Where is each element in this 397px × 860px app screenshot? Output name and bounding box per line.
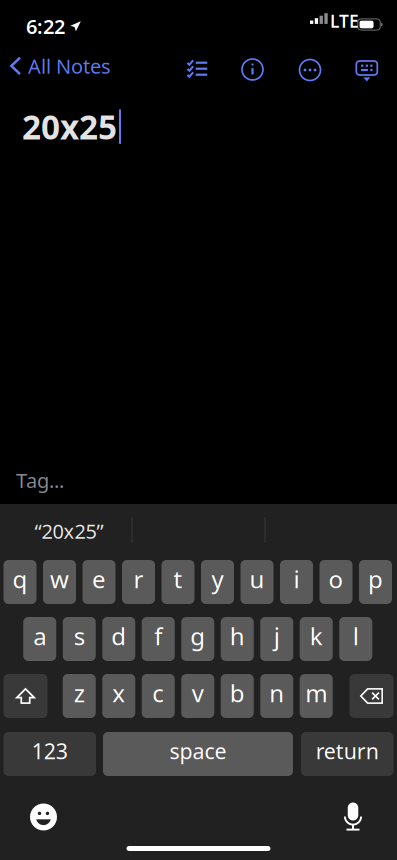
button[interactable]: b — [221, 674, 254, 718]
staticText: 123 — [32, 737, 68, 765]
staticText: p — [368, 563, 383, 595]
staticText: 6:22 — [26, 13, 65, 40]
staticText: 20x25 — [22, 104, 117, 149]
button[interactable]: Checklist — [173, 46, 213, 90]
button[interactable]: More — [290, 48, 330, 92]
button[interactable]: o — [319, 560, 352, 604]
button[interactable]: m — [300, 674, 333, 718]
staticText: i — [293, 563, 299, 595]
button[interactable]: x — [102, 674, 135, 718]
staticText: Tag... — [16, 467, 64, 494]
button[interactable]: w — [43, 560, 76, 604]
staticText: m — [305, 677, 327, 709]
staticText: l — [353, 620, 359, 652]
button[interactable]: f — [142, 617, 175, 661]
button[interactable]: Delete — [349, 674, 393, 718]
staticText: j — [274, 620, 280, 652]
staticText: n — [269, 677, 284, 709]
staticText: z — [74, 677, 85, 709]
staticText: e — [92, 563, 106, 595]
staticText: u — [249, 563, 264, 595]
button[interactable]: l — [339, 617, 372, 661]
button[interactable]: e — [82, 560, 115, 604]
button[interactable]: g — [181, 617, 214, 661]
button[interactable]: 123 — [3, 732, 96, 776]
staticText: w — [50, 563, 69, 595]
staticText: All Notes — [28, 53, 111, 79]
button[interactable]: c — [142, 674, 175, 718]
staticText: LTE — [330, 9, 359, 32]
button[interactable]: h — [221, 617, 254, 661]
button[interactable]: t — [161, 560, 194, 604]
button[interactable]: z — [63, 674, 96, 718]
button[interactable]: j — [260, 617, 293, 661]
button[interactable]: p — [359, 560, 392, 604]
button[interactable]: s — [63, 617, 96, 661]
staticText: k — [310, 620, 323, 652]
staticText: f — [154, 620, 162, 652]
button[interactable]: “20x25” — [3, 509, 135, 553]
button[interactable]: Shift — [3, 674, 47, 718]
button[interactable]: v — [181, 674, 214, 718]
staticText: s — [74, 620, 85, 652]
staticText: g — [190, 620, 205, 652]
button[interactable]: d — [102, 617, 135, 661]
staticText: h — [230, 620, 245, 652]
button[interactable]: q — [3, 560, 36, 604]
staticText: t — [173, 563, 182, 595]
button[interactable]: i — [280, 560, 313, 604]
button[interactable]: return — [301, 732, 393, 776]
staticText: x — [112, 677, 125, 709]
staticText: “20x25” — [34, 518, 103, 544]
button[interactable]: k — [300, 617, 333, 661]
staticText: o — [328, 563, 343, 595]
staticText: q — [12, 563, 27, 595]
button[interactable]: space — [103, 732, 293, 776]
button[interactable]: Hide Keyboard — [347, 46, 387, 90]
staticText: y — [211, 563, 223, 595]
button[interactable]: Emoji — [21, 795, 65, 839]
staticText: a — [33, 620, 46, 652]
button[interactable]: All Notes — [0, 44, 150, 88]
staticText: r — [133, 563, 143, 595]
button[interactable]: Dictation — [331, 795, 375, 839]
button[interactable]: r — [122, 560, 155, 604]
button[interactable]: Note Info — [232, 47, 272, 91]
staticText: space — [169, 737, 226, 765]
button[interactable]: n — [260, 674, 293, 718]
button[interactable]: u — [240, 560, 273, 604]
staticText: d — [111, 620, 126, 652]
staticText: b — [230, 677, 245, 709]
button[interactable]: a — [23, 617, 56, 661]
staticText: return — [316, 737, 379, 765]
staticText: c — [152, 677, 164, 709]
staticText: v — [192, 677, 204, 709]
button[interactable]: y — [201, 560, 234, 604]
